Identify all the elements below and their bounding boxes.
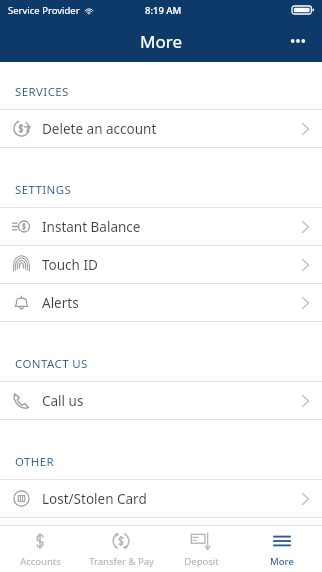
staticText: More	[270, 555, 294, 568]
button[interactable]: Deposit	[161, 526, 241, 572]
staticText: Call us	[42, 392, 84, 410]
button[interactable]: Lost/Stolen Card	[0, 480, 322, 517]
staticText: Touch ID	[42, 256, 98, 274]
staticText: Lost/Stolen Card	[42, 490, 147, 508]
staticText: Service Provider	[8, 4, 80, 17]
staticText: Accounts	[20, 555, 61, 568]
staticText: Instant Balance	[42, 218, 141, 236]
staticText: OTHER	[15, 454, 55, 470]
button[interactable]: Instant Balance	[0, 208, 322, 245]
staticText: SERVICES	[15, 84, 69, 100]
button[interactable]: Accounts	[0, 526, 80, 572]
staticText: 8:19 AM	[145, 4, 182, 17]
staticText: Deposit	[184, 555, 219, 568]
button[interactable]: Delete an account	[0, 110, 322, 147]
staticText: SETTINGS	[15, 182, 72, 198]
staticText: Delete an account	[42, 120, 157, 138]
button[interactable]: Alerts	[0, 284, 322, 321]
staticText: Transfer & Pay	[89, 555, 154, 568]
button[interactable]: Call us	[0, 382, 322, 419]
button[interactable]: More	[242, 526, 322, 572]
button[interactable]: Touch ID	[0, 246, 322, 283]
staticText: Alerts	[42, 294, 79, 312]
staticText: CONTACT US	[15, 356, 88, 372]
staticText: More	[140, 30, 182, 53]
button[interactable]: More options	[280, 23, 316, 59]
button[interactable]: Transfer & Pay	[81, 526, 161, 572]
